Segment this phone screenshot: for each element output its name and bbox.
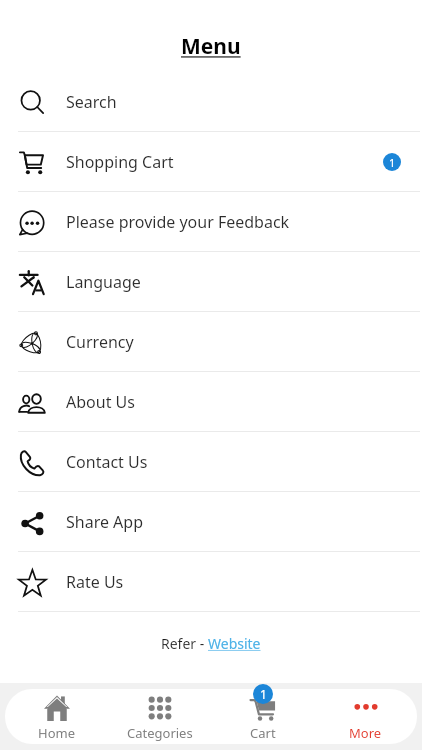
button[interactable]: Share App: [0, 492, 422, 552]
staticText: Contact Us: [66, 451, 148, 473]
staticText: Share App: [66, 511, 144, 533]
staticText: Categories: [127, 724, 193, 742]
button[interactable]: Shopping Cart: [0, 132, 422, 192]
staticText: Please provide your Feedback: [66, 211, 290, 233]
button[interactable]: Website: [208, 634, 261, 653]
staticText: Rate Us: [66, 571, 124, 593]
button[interactable]: Language: [0, 252, 422, 312]
button[interactable]: Contact Us: [0, 432, 422, 492]
staticText: Cart: [250, 724, 276, 742]
staticText: Menu: [181, 32, 241, 61]
staticText: 1: [389, 155, 396, 170]
button[interactable]: Categories: [108, 683, 211, 750]
staticText: About Us: [66, 391, 135, 413]
button[interactable]: Please provide your Feedback: [0, 192, 422, 252]
button[interactable]: About Us: [0, 372, 422, 432]
button[interactable]: Currency: [0, 312, 422, 372]
staticText: Language: [66, 271, 141, 293]
staticText: Currency: [66, 331, 134, 353]
staticText: Shopping Cart: [66, 151, 174, 173]
staticText: 1: [260, 686, 267, 702]
button[interactable]: More: [314, 683, 417, 750]
staticText: More: [349, 724, 382, 742]
button[interactable]: Home: [5, 683, 108, 750]
staticText: Search: [66, 91, 117, 113]
button[interactable]: Rate Us: [0, 552, 422, 612]
staticText: Refer -: [161, 634, 208, 653]
button[interactable]: 1: [211, 683, 314, 750]
staticText: Home: [38, 724, 75, 742]
button[interactable]: Search: [0, 72, 422, 132]
